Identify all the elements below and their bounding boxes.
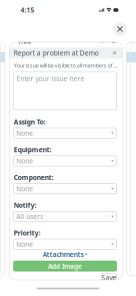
staticText: Report a problem at Demo	[14, 48, 99, 57]
staticText: Enter your issue here	[16, 74, 84, 83]
staticText: Add Image	[48, 262, 82, 270]
staticText: None	[16, 184, 33, 193]
staticText: Component:	[14, 173, 54, 182]
staticText: None	[16, 240, 33, 249]
button[interactable]: Dismiss	[111, 49, 118, 56]
button[interactable]: None	[14, 156, 116, 166]
button[interactable]: None	[14, 183, 116, 194]
button[interactable]: Close	[113, 22, 127, 36]
button[interactable]: None	[14, 239, 116, 249]
staticText: 1:08	[17, 36, 31, 45]
staticText: None	[16, 129, 33, 138]
staticText: Save	[101, 273, 116, 282]
button[interactable]: Save	[101, 274, 116, 282]
button[interactable]: Attachments	[14, 251, 116, 258]
staticText: Your issue will be visible to all member…	[14, 62, 118, 69]
button[interactable]: All users	[14, 211, 116, 222]
button[interactable]: None	[14, 128, 116, 138]
staticText: 4:15	[20, 6, 34, 14]
staticText: Assign To:	[14, 117, 46, 126]
button[interactable]: Add Image	[14, 261, 116, 271]
staticText: Attachments	[43, 250, 84, 259]
staticText: None	[16, 156, 33, 165]
staticText: Priority:	[14, 228, 41, 237]
staticText: Notify:	[14, 201, 37, 210]
staticText: Equipment:	[14, 145, 52, 154]
staticText: All users	[16, 212, 43, 221]
